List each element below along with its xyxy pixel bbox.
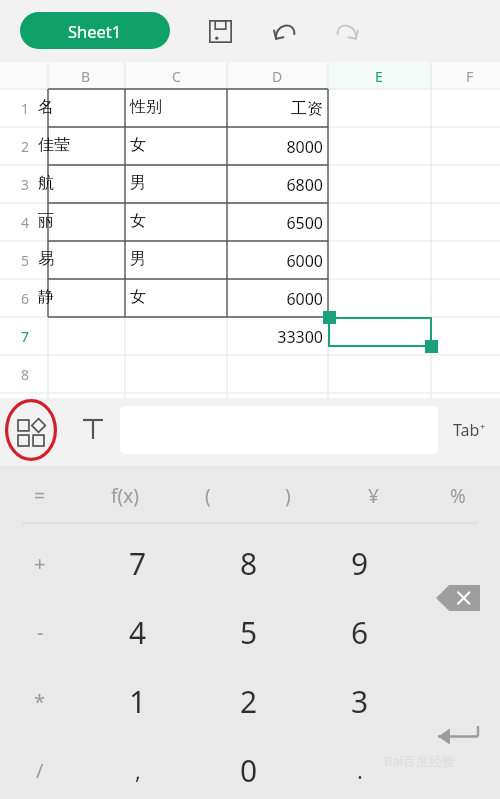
button[interactable]: 3 (308, 668, 412, 734)
staticText: E (375, 67, 383, 86)
staticText: 6 (351, 612, 369, 653)
button[interactable]: % (420, 470, 496, 522)
staticText: 丽 (38, 211, 54, 231)
staticText: F (466, 67, 474, 86)
staticText: 1 (129, 681, 147, 722)
button[interactable]: Text format (74, 410, 112, 448)
staticText: 6000 (286, 288, 323, 310)
staticText: + (480, 420, 486, 432)
staticText: Sheet1 (68, 20, 122, 42)
staticText: 6800 (286, 174, 323, 196)
button[interactable]: ) (250, 470, 326, 522)
button[interactable]: 7 (86, 530, 190, 596)
button[interactable]: / (6, 737, 74, 799)
staticText: 6000 (286, 250, 323, 272)
button[interactable]: 9 (308, 530, 412, 596)
button[interactable]: Enter (416, 668, 500, 799)
staticText: 男 (130, 249, 146, 269)
staticText: 8 (240, 543, 258, 584)
staticText: 2 (21, 137, 30, 156)
button[interactable]: 1 (86, 668, 190, 734)
button[interactable]: Redo (324, 9, 368, 53)
button[interactable]: 5 (197, 599, 301, 665)
button[interactable]: . (308, 737, 412, 799)
staticText: 4 (21, 213, 30, 232)
staticText: 名 (38, 97, 54, 117)
button[interactable]: ( (170, 470, 246, 522)
button[interactable]: B (72, 65, 100, 87)
staticText: 1 (21, 99, 30, 118)
button[interactable]: = (1, 470, 77, 522)
button[interactable]: Insert object (8, 410, 54, 456)
staticText: 5 (240, 612, 258, 653)
button[interactable]: Backspace (416, 530, 500, 665)
staticText: 3 (351, 681, 369, 722)
staticText: 女 (130, 287, 146, 307)
button[interactable]: 2 (197, 668, 301, 734)
staticText: * (34, 688, 46, 715)
staticText: / (36, 757, 44, 784)
staticText: B (81, 67, 91, 86)
staticText: 3 (21, 175, 30, 194)
staticText: 佳莹 (38, 135, 70, 155)
button[interactable]: 6 (308, 599, 412, 665)
staticText: 航 (38, 173, 54, 193)
staticText: % (450, 483, 466, 509)
staticText: Tab (453, 419, 480, 441)
button[interactable]: f(x) (87, 470, 163, 522)
staticText: 2 (240, 681, 258, 722)
staticText: + (34, 550, 46, 577)
staticText: 0 (240, 750, 258, 791)
button[interactable]: 0 (197, 737, 301, 799)
staticText: 工资 (291, 99, 323, 119)
staticText: 易 (38, 249, 54, 269)
staticText: Bai百度经验 (384, 752, 456, 770)
staticText: 男 (130, 173, 146, 193)
staticText: 5 (21, 251, 30, 270)
staticText: , (135, 755, 141, 785)
staticText: 7 (129, 543, 147, 584)
button[interactable]: D (263, 65, 291, 87)
button[interactable]: 8 (197, 530, 301, 596)
button[interactable]: C (162, 65, 190, 87)
staticText: f(x) (111, 483, 139, 509)
staticText: = (34, 483, 45, 509)
staticText: 6 (21, 289, 30, 308)
staticText: ) (285, 483, 291, 509)
button[interactable]: ¥ (335, 470, 411, 522)
button[interactable]: Undo (264, 9, 308, 53)
staticText: 女 (130, 135, 146, 155)
staticText: . (357, 755, 363, 785)
staticText: 9 (351, 543, 369, 584)
button[interactable]: E (365, 65, 393, 87)
staticText: ( (205, 483, 211, 509)
button[interactable]: 4 (86, 599, 190, 665)
button[interactable]: Save (198, 9, 242, 53)
button[interactable]: Tab (444, 412, 494, 448)
staticText: D (272, 67, 283, 86)
button[interactable]: + (6, 530, 74, 596)
staticText: 10 (17, 441, 34, 460)
staticText: ¥ (368, 483, 379, 509)
button[interactable]: F (456, 65, 484, 87)
staticText: 33300 (277, 326, 323, 348)
staticText: 8000 (286, 136, 323, 158)
staticText: 静 (38, 287, 54, 307)
button[interactable]: * (6, 668, 74, 734)
staticText: 9 (21, 403, 30, 422)
staticText: C (172, 67, 181, 86)
staticText: 6500 (286, 212, 323, 234)
button[interactable]: Sheet1 (20, 12, 170, 49)
staticText: 8 (21, 365, 30, 384)
staticText: 性别 (130, 97, 162, 117)
button[interactable]: , (86, 737, 190, 799)
staticText: 4 (129, 612, 147, 653)
staticText: - (37, 619, 44, 646)
staticText: 女 (130, 211, 146, 231)
staticText: 7 (21, 327, 30, 346)
